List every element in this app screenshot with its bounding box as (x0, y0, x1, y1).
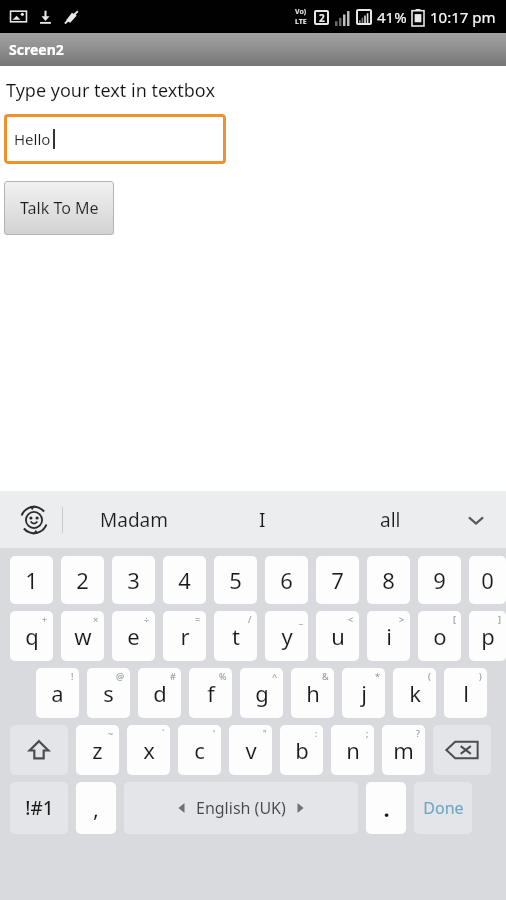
staticText: / (248, 613, 252, 625)
button[interactable]: q (10, 611, 53, 661)
button[interactable]: d (138, 668, 181, 718)
button[interactable]: c (178, 725, 221, 775)
button[interactable]: p (469, 611, 506, 661)
button[interactable]: Madam (70, 491, 198, 548)
button[interactable]: l (444, 668, 487, 718)
staticText: Hello (14, 129, 51, 149)
staticText: * (375, 670, 380, 682)
button[interactable]: h (291, 668, 334, 718)
button[interactable]: 9 (418, 556, 461, 604)
staticText: I (259, 507, 266, 533)
button[interactable]: z (76, 725, 119, 775)
button[interactable]: i (367, 611, 410, 661)
button[interactable]: 3 (112, 556, 155, 604)
button[interactable]: Shift (10, 725, 68, 775)
staticText: < (348, 613, 354, 625)
button[interactable]: f (189, 668, 232, 718)
staticText: 1 (25, 565, 38, 595)
staticText: ( (428, 670, 431, 682)
button[interactable]: x (127, 725, 170, 775)
button[interactable]: a (36, 668, 79, 718)
staticText: y (281, 621, 293, 651)
staticText: a (51, 678, 64, 708)
staticText: Vo) (295, 7, 307, 17)
staticText: ! (71, 670, 74, 682)
button[interactable]: Done (414, 782, 472, 834)
button[interactable]: w (61, 611, 104, 661)
staticText: p (481, 621, 495, 651)
staticText: , (93, 793, 99, 823)
button[interactable]: Expand suggestions (454, 491, 498, 548)
button[interactable]: 8 (367, 556, 410, 604)
button[interactable]: 4 (163, 556, 206, 604)
staticText: ` (162, 727, 165, 739)
button[interactable]: m (382, 725, 425, 775)
staticText: [ (453, 613, 456, 625)
button[interactable]: s (87, 668, 130, 718)
button[interactable]: e (112, 611, 155, 661)
staticText: ) (479, 670, 482, 682)
staticText: # (170, 670, 176, 682)
staticText: ^ (272, 670, 278, 682)
button[interactable]: 1 (10, 556, 53, 604)
staticText: ~ (108, 727, 114, 739)
button[interactable]: j (342, 668, 385, 718)
staticText: 2 (76, 565, 89, 595)
staticText: 8 (382, 565, 395, 595)
button[interactable]: 0 (469, 556, 506, 604)
button[interactable]: . (366, 782, 406, 834)
button[interactable]: t (214, 611, 257, 661)
button[interactable]: y (265, 611, 308, 661)
staticText: " (263, 727, 267, 739)
staticText: d (153, 678, 167, 708)
button[interactable]: English (UK) (124, 782, 358, 834)
button[interactable]: Backspace (433, 725, 491, 775)
staticText: : (315, 727, 318, 739)
button[interactable]: , (76, 782, 116, 834)
staticText: ÷ (144, 613, 150, 625)
staticText: f (207, 678, 215, 708)
staticText: 6 (280, 565, 293, 595)
button[interactable]: u (316, 611, 359, 661)
staticText: !#1 (25, 795, 54, 821)
button[interactable]: k (393, 668, 436, 718)
button[interactable]: r (163, 611, 206, 661)
button[interactable]: 2 (61, 556, 104, 604)
staticText: = (195, 613, 201, 625)
button[interactable]: I (198, 491, 326, 548)
staticText: ] (498, 613, 501, 625)
staticText: 3 (127, 565, 140, 595)
staticText: k (409, 678, 421, 708)
staticText: ' (213, 727, 216, 739)
button[interactable]: all (326, 491, 454, 548)
button[interactable]: o (418, 611, 461, 661)
staticText: & (322, 670, 329, 682)
button[interactable]: Talk To Me (4, 181, 114, 235)
staticText: m (393, 735, 414, 765)
staticText: Talk To Me (20, 197, 99, 219)
staticText: 2 (319, 11, 325, 25)
button[interactable]: n (331, 725, 374, 775)
staticText: n (346, 735, 360, 765)
button[interactable]: 7 (316, 556, 359, 604)
staticText: c (194, 735, 205, 765)
staticText: t (232, 621, 240, 651)
staticText: ; (366, 727, 369, 739)
staticText: 7 (331, 565, 344, 595)
button[interactable]: Emoji (14, 500, 54, 540)
staticText: Done (423, 797, 464, 819)
staticText: 4 (178, 565, 191, 595)
button[interactable]: Hello (4, 114, 226, 164)
staticText: u (331, 621, 345, 651)
staticText: + (42, 613, 48, 625)
button[interactable]: g (240, 668, 283, 718)
button[interactable]: 6 (265, 556, 308, 604)
button[interactable]: v (229, 725, 272, 775)
button[interactable]: 5 (214, 556, 257, 604)
staticText: 0 (481, 565, 494, 595)
staticText: w (74, 621, 92, 651)
staticText: × (93, 613, 99, 625)
button[interactable]: !#1 (10, 782, 68, 834)
button[interactable]: b (280, 725, 323, 775)
staticText: e (127, 621, 140, 651)
